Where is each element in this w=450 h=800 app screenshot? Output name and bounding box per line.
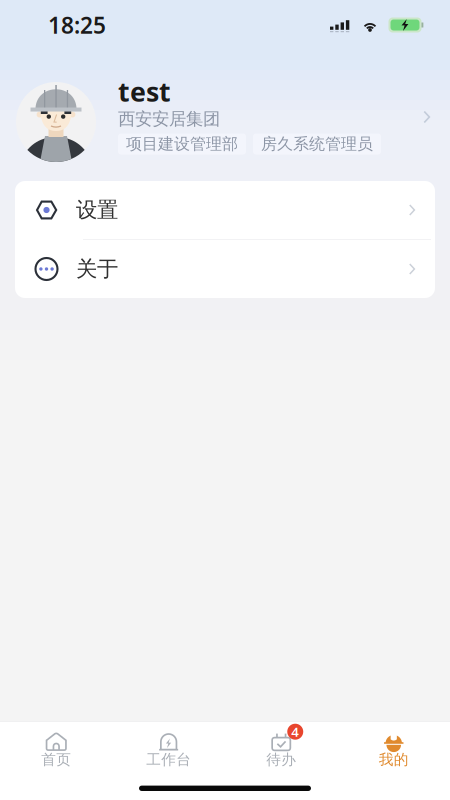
button[interactable]: 我的 xyxy=(337,722,450,767)
button[interactable]: 首页 xyxy=(0,722,112,767)
staticText: 我的 xyxy=(379,751,409,769)
staticText: 待办 xyxy=(266,751,296,769)
button[interactable]: 关于 xyxy=(15,240,435,298)
button[interactable]: 设置 xyxy=(15,181,435,239)
staticText: test xyxy=(118,74,171,109)
staticText: 西安安居集团 xyxy=(118,108,220,130)
staticText: 首页 xyxy=(41,751,71,769)
button[interactable]: test xyxy=(0,77,450,157)
button[interactable]: 工作台 xyxy=(112,722,225,767)
staticText: 设置 xyxy=(76,197,118,223)
staticText: 4 xyxy=(291,723,299,740)
staticText: 房久系统管理员 xyxy=(261,134,373,154)
staticText: 18:25 xyxy=(48,10,106,40)
staticText: 关于 xyxy=(76,256,118,282)
button[interactable]: 4 xyxy=(225,722,337,767)
staticText: 项目建设管理部 xyxy=(126,134,238,154)
staticText: 工作台 xyxy=(146,751,191,769)
